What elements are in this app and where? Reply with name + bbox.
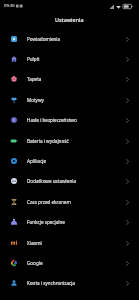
staticText: Pulpit (27, 56, 40, 62)
staticText: Konta i synchronizacja (27, 280, 76, 286)
staticText: 09:35 (4, 3, 15, 9)
button[interactable]: Funkcje specjalne (0, 212, 139, 232)
staticText: Tapeta (27, 76, 42, 82)
button[interactable]: Google (0, 253, 139, 273)
staticText: Hasła i bezpieczeństwo (27, 117, 77, 123)
button[interactable]: Konta i synchronizacja (0, 273, 139, 293)
staticText: Czas przed ekranem (27, 199, 71, 205)
button[interactable]: Bateria i wydajność (0, 131, 139, 151)
staticText: Bateria i wydajność (27, 138, 69, 144)
button[interactable]: Czas przed ekranem (0, 192, 139, 212)
button[interactable]: Tapeta (0, 69, 139, 89)
button[interactable]: Powiadomienia (0, 29, 139, 49)
button[interactable]: Motywy (0, 90, 139, 110)
button[interactable]: Hasła i bezpieczeństwo (0, 110, 139, 130)
button[interactable]: Pulpit (0, 49, 139, 69)
staticText: Funkcje specjalne (27, 219, 65, 225)
button[interactable]: Aplikacje (0, 151, 139, 171)
staticText: Ustawienia (55, 16, 84, 23)
button[interactable]: Xiaomi (0, 233, 139, 253)
staticText: Motywy (27, 97, 44, 103)
staticText: Powiadomienia (27, 36, 61, 42)
staticText: Google (27, 260, 43, 266)
button[interactable]: Dodatkowe ustawienia (0, 171, 139, 191)
staticText: Aplikacje (27, 158, 47, 164)
staticText: Xiaomi (27, 240, 42, 246)
staticText: Dodatkowe ustawienia (27, 178, 76, 184)
